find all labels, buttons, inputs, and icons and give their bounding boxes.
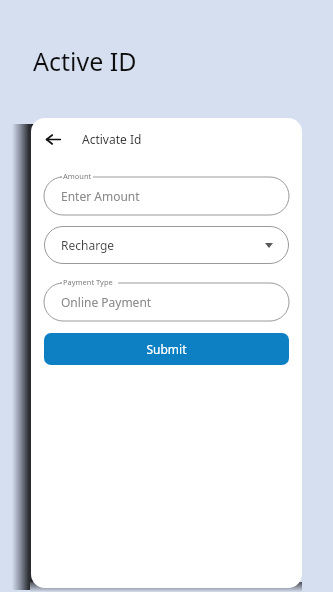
staticText: Online Payment [61, 294, 152, 310]
staticText: Active ID [33, 44, 137, 78]
button[interactable]: Amount [44, 169, 289, 215]
staticText: Enter Amount [61, 188, 140, 204]
staticText: Submit [146, 341, 187, 357]
button[interactable]: Back [42, 128, 64, 150]
button[interactable]: Submit [44, 333, 289, 365]
staticText: Recharge [61, 237, 115, 253]
staticText: Payment Type [63, 277, 113, 287]
staticText: Amount [63, 171, 92, 181]
staticText: Activate Id [82, 131, 142, 147]
button[interactable]: Payment Type [44, 275, 289, 321]
button[interactable]: Recharge [44, 226, 289, 264]
